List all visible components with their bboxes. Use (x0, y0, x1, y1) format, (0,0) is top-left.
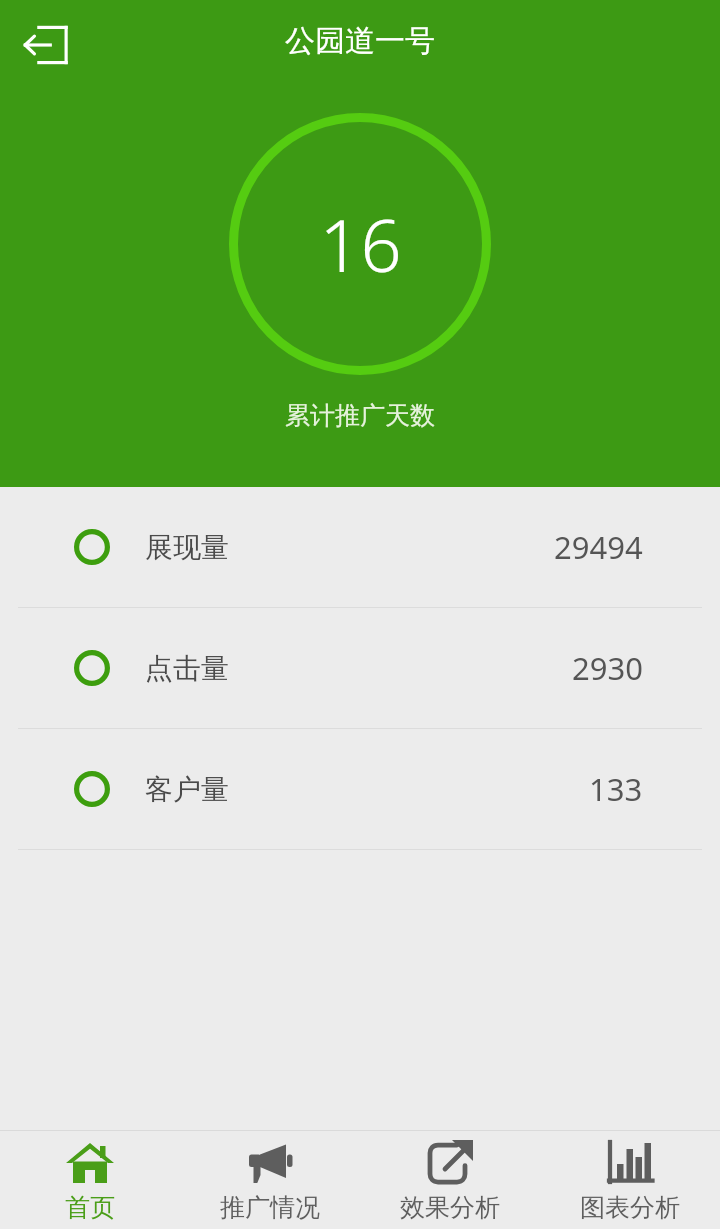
staticText: 公园道一号 (285, 22, 435, 60)
staticText: 累计推广天数 (285, 400, 435, 431)
button[interactable]: 点击量 (0, 608, 720, 728)
staticText: 29494 (554, 526, 643, 568)
staticText: 点击量 (145, 651, 229, 686)
staticText: 效果分析 (400, 1192, 500, 1223)
button[interactable]: 图表分析 (540, 1131, 720, 1229)
staticText: 展现量 (145, 530, 229, 565)
button[interactable]: 推广情况 (180, 1131, 360, 1229)
button[interactable]: 客户量 (0, 729, 720, 849)
staticText: 133 (589, 768, 643, 810)
staticText: 图表分析 (580, 1192, 680, 1223)
staticText: 首页 (65, 1192, 115, 1223)
button[interactable]: 展现量 (0, 487, 720, 607)
staticText: 16 (319, 195, 402, 293)
button[interactable]: 返回 (14, 14, 76, 76)
staticText: 推广情况 (220, 1192, 320, 1223)
staticText: 2930 (572, 647, 643, 689)
button[interactable]: 效果分析 (360, 1131, 540, 1229)
staticText: 客户量 (145, 772, 229, 807)
button[interactable]: 首页 (0, 1131, 180, 1229)
